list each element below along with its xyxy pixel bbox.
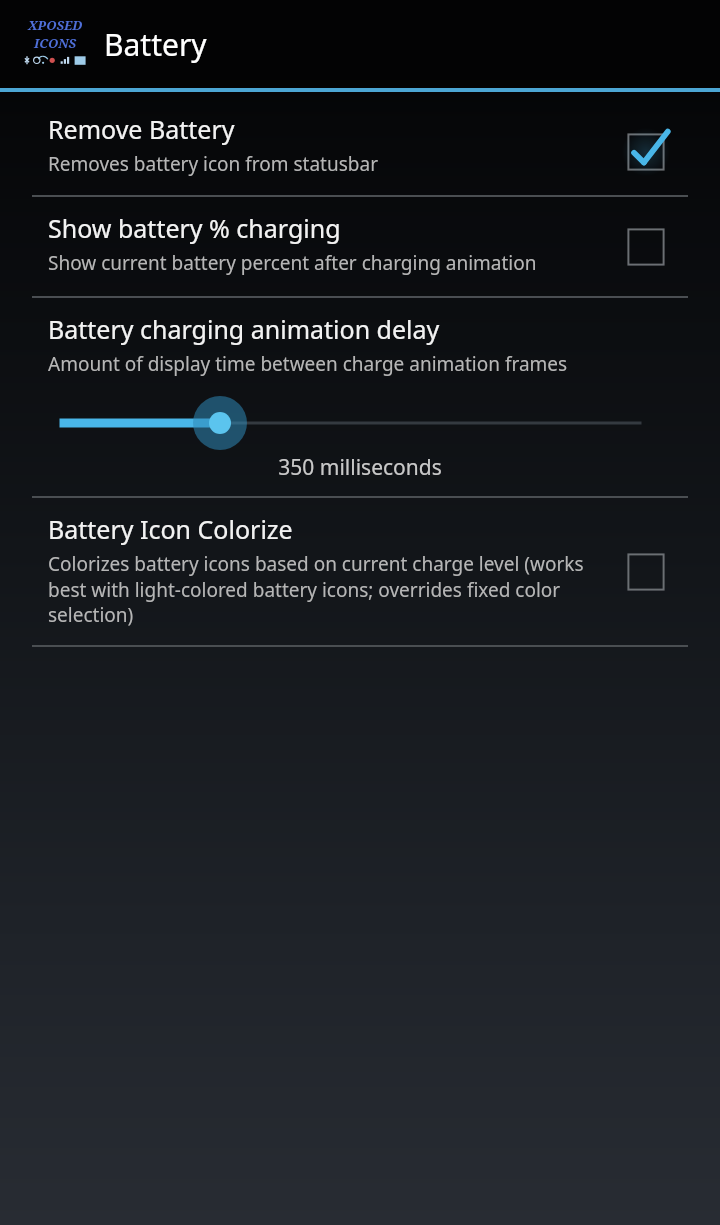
button[interactable]: Remove Battery [0, 108, 720, 195]
staticText: XPOSED [28, 16, 83, 34]
button[interactable]: Battery Icon Colorize [0, 498, 720, 645]
button[interactable]: Show battery % charging [0, 197, 720, 296]
staticText: Show battery % charging [48, 211, 341, 245]
other: Animation delay slider [0, 393, 720, 453]
staticText: 350 milliseconds [48, 453, 672, 482]
staticText: Amount of display time between charge an… [48, 351, 568, 377]
button[interactable]: Battery charging animation delay [0, 298, 720, 496]
button[interactable]: Up [20, 0, 720, 88]
staticText: ICONS [34, 34, 77, 52]
staticText: Battery Icon Colorize [48, 512, 293, 546]
staticText: Show current battery percent after charg… [48, 250, 537, 276]
staticText: Removes battery icon from statusbar [48, 151, 378, 177]
staticText: Colorizes battery icons based on current… [48, 551, 612, 627]
staticText: Battery [104, 24, 207, 65]
staticText: Remove Battery [48, 112, 235, 146]
staticText: Battery charging animation delay [48, 312, 440, 346]
